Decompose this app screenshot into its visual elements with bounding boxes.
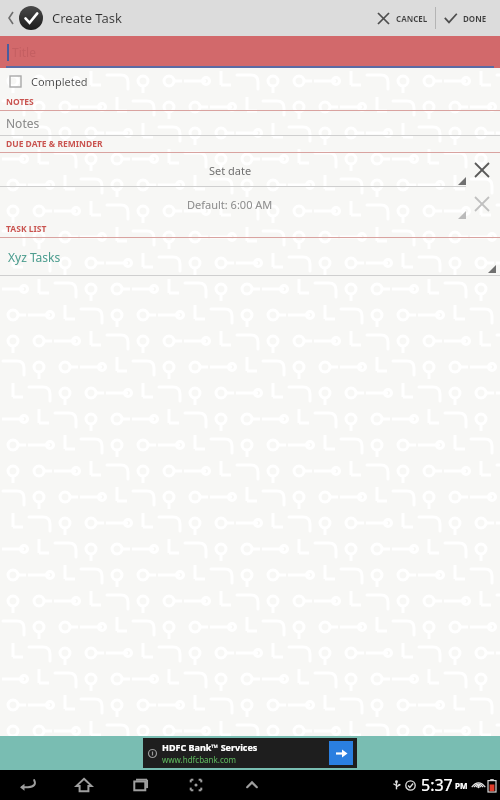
staticText: www.hdfcbank.com bbox=[162, 754, 237, 765]
button[interactable]: Home bbox=[56, 770, 112, 800]
staticText: Create Task bbox=[52, 9, 123, 27]
button[interactable]: Completed bbox=[0, 68, 500, 94]
staticText: DUE DATE & REMINDER bbox=[6, 138, 103, 150]
button[interactable]: Set date bbox=[0, 153, 500, 187]
button[interactable]: Screenshot bbox=[168, 770, 224, 800]
staticText: HDFC Bank™ Services bbox=[162, 741, 258, 753]
staticText: PM bbox=[455, 780, 468, 791]
staticText: Set date bbox=[209, 163, 252, 178]
button[interactable]: Xyz Tasks bbox=[0, 238, 500, 276]
staticText: Title bbox=[12, 44, 36, 60]
button[interactable]: HDFC Bank™ Services bbox=[143, 738, 357, 768]
staticText: Completed bbox=[31, 74, 88, 89]
button[interactable]: Default: 6:00 AM bbox=[0, 187, 500, 221]
button[interactable]: DONE bbox=[436, 0, 494, 36]
staticText: Default: 6:00 AM bbox=[187, 197, 273, 212]
button[interactable]: Notes bbox=[0, 111, 500, 136]
button[interactable]: Expand bbox=[224, 770, 280, 800]
button[interactable]: Clear bbox=[470, 158, 494, 182]
button[interactable]: Back bbox=[0, 770, 56, 800]
staticText: TASK LIST bbox=[6, 223, 47, 235]
button[interactable]: Title bbox=[0, 36, 500, 68]
staticText: NOTES bbox=[6, 96, 34, 108]
staticText: Notes bbox=[6, 115, 40, 131]
button[interactable]: Recent apps bbox=[112, 770, 168, 800]
staticText: 5:37 bbox=[421, 774, 453, 796]
staticText: CANCEL bbox=[396, 13, 428, 24]
button[interactable]: CANCEL bbox=[369, 0, 435, 36]
staticText: Xyz Tasks bbox=[8, 249, 61, 265]
staticText: DONE bbox=[463, 13, 487, 24]
button[interactable]: Clear bbox=[470, 192, 494, 216]
button[interactable]: Up bbox=[4, 0, 46, 36]
